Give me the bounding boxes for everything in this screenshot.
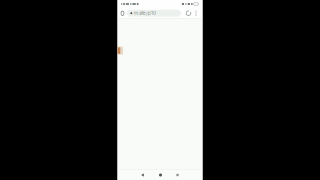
button[interactable]: Tabs <box>118 8 127 18</box>
button[interactable]: More options <box>193 8 199 18</box>
button[interactable]: m.site/p10 <box>127 10 181 17</box>
button[interactable]: Reload <box>184 8 193 18</box>
staticText: m.site/p10 <box>134 10 156 16</box>
button[interactable]: Recent apps <box>172 170 182 180</box>
button[interactable]: Back <box>137 170 147 180</box>
button[interactable]: Home <box>155 170 165 180</box>
